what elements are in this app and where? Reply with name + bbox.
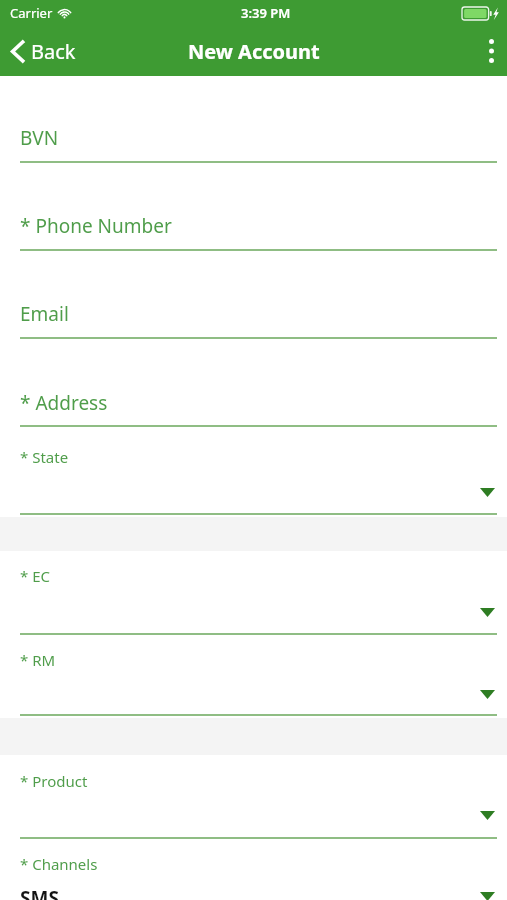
button[interactable]: More options xyxy=(476,30,507,72)
staticText: BVN xyxy=(20,125,59,151)
button[interactable]: Open dropdown xyxy=(472,688,507,701)
staticText: Email xyxy=(20,301,69,327)
button[interactable]: Open dropdown xyxy=(472,486,507,499)
staticText: 3:39 PM xyxy=(241,4,291,22)
staticText: New Account xyxy=(188,38,320,65)
staticText: * RM xyxy=(20,650,56,670)
button[interactable]: * Product xyxy=(0,771,507,791)
button[interactable]: BVN xyxy=(0,125,507,151)
button[interactable]: * RM xyxy=(0,650,507,670)
staticText: SMS xyxy=(20,885,59,900)
button[interactable]: Open dropdown xyxy=(472,890,507,900)
button[interactable]: * EC xyxy=(0,566,507,586)
staticText: * EC xyxy=(20,566,50,586)
staticText: * Phone Number xyxy=(20,213,172,239)
button[interactable]: * Phone Number xyxy=(0,213,507,239)
staticText: Back xyxy=(31,38,76,65)
button[interactable]: * Channels xyxy=(0,854,507,874)
staticText: * Product xyxy=(20,771,88,791)
button[interactable]: Open dropdown xyxy=(472,606,507,619)
staticText: * State xyxy=(20,447,69,467)
button[interactable]: SMS xyxy=(0,885,507,900)
button[interactable]: * State xyxy=(0,447,507,467)
staticText: * Address xyxy=(20,390,108,416)
staticText: * Channels xyxy=(20,854,98,874)
button[interactable]: Open dropdown xyxy=(472,809,507,822)
button[interactable]: Back xyxy=(0,30,88,73)
staticText: Carrier xyxy=(10,4,53,22)
button[interactable]: Email xyxy=(0,301,507,327)
button[interactable]: * Address xyxy=(0,390,507,416)
